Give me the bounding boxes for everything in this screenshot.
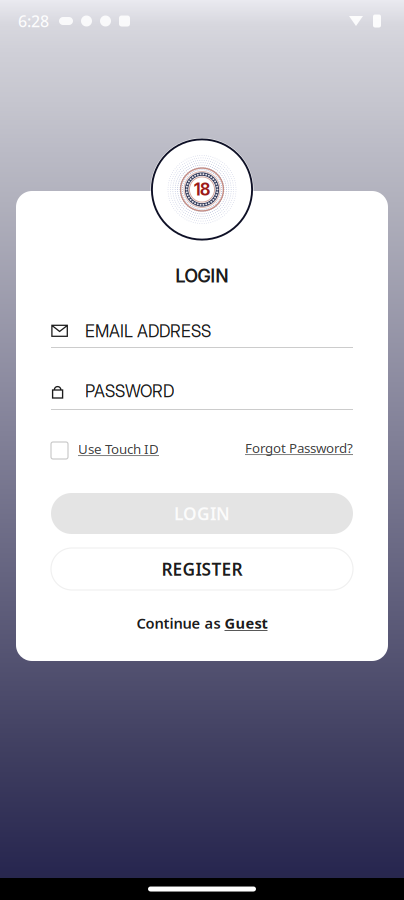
staticText: EMAIL ADDRESS <box>85 321 211 341</box>
button[interactable]: Use Touch ID <box>51 439 159 460</box>
staticText: LOGIN <box>174 502 230 525</box>
staticText: 6:28 <box>18 10 49 32</box>
button[interactable]: LOGIN <box>51 493 353 534</box>
button[interactable]: Continue as <box>136 614 267 632</box>
staticText: Forgot Password? <box>245 439 353 457</box>
staticText: LOGIN <box>175 265 228 287</box>
staticText: Continue as <box>136 613 220 633</box>
staticText: Guest <box>224 613 267 633</box>
staticText: PASSWORD <box>85 381 174 401</box>
button[interactable]: Forgot Password? <box>245 439 353 460</box>
staticText: Use Touch ID <box>78 440 159 458</box>
staticText: REGISTER <box>161 557 242 580</box>
button[interactable]: REGISTER <box>51 548 353 590</box>
staticText: 18 <box>194 179 210 200</box>
